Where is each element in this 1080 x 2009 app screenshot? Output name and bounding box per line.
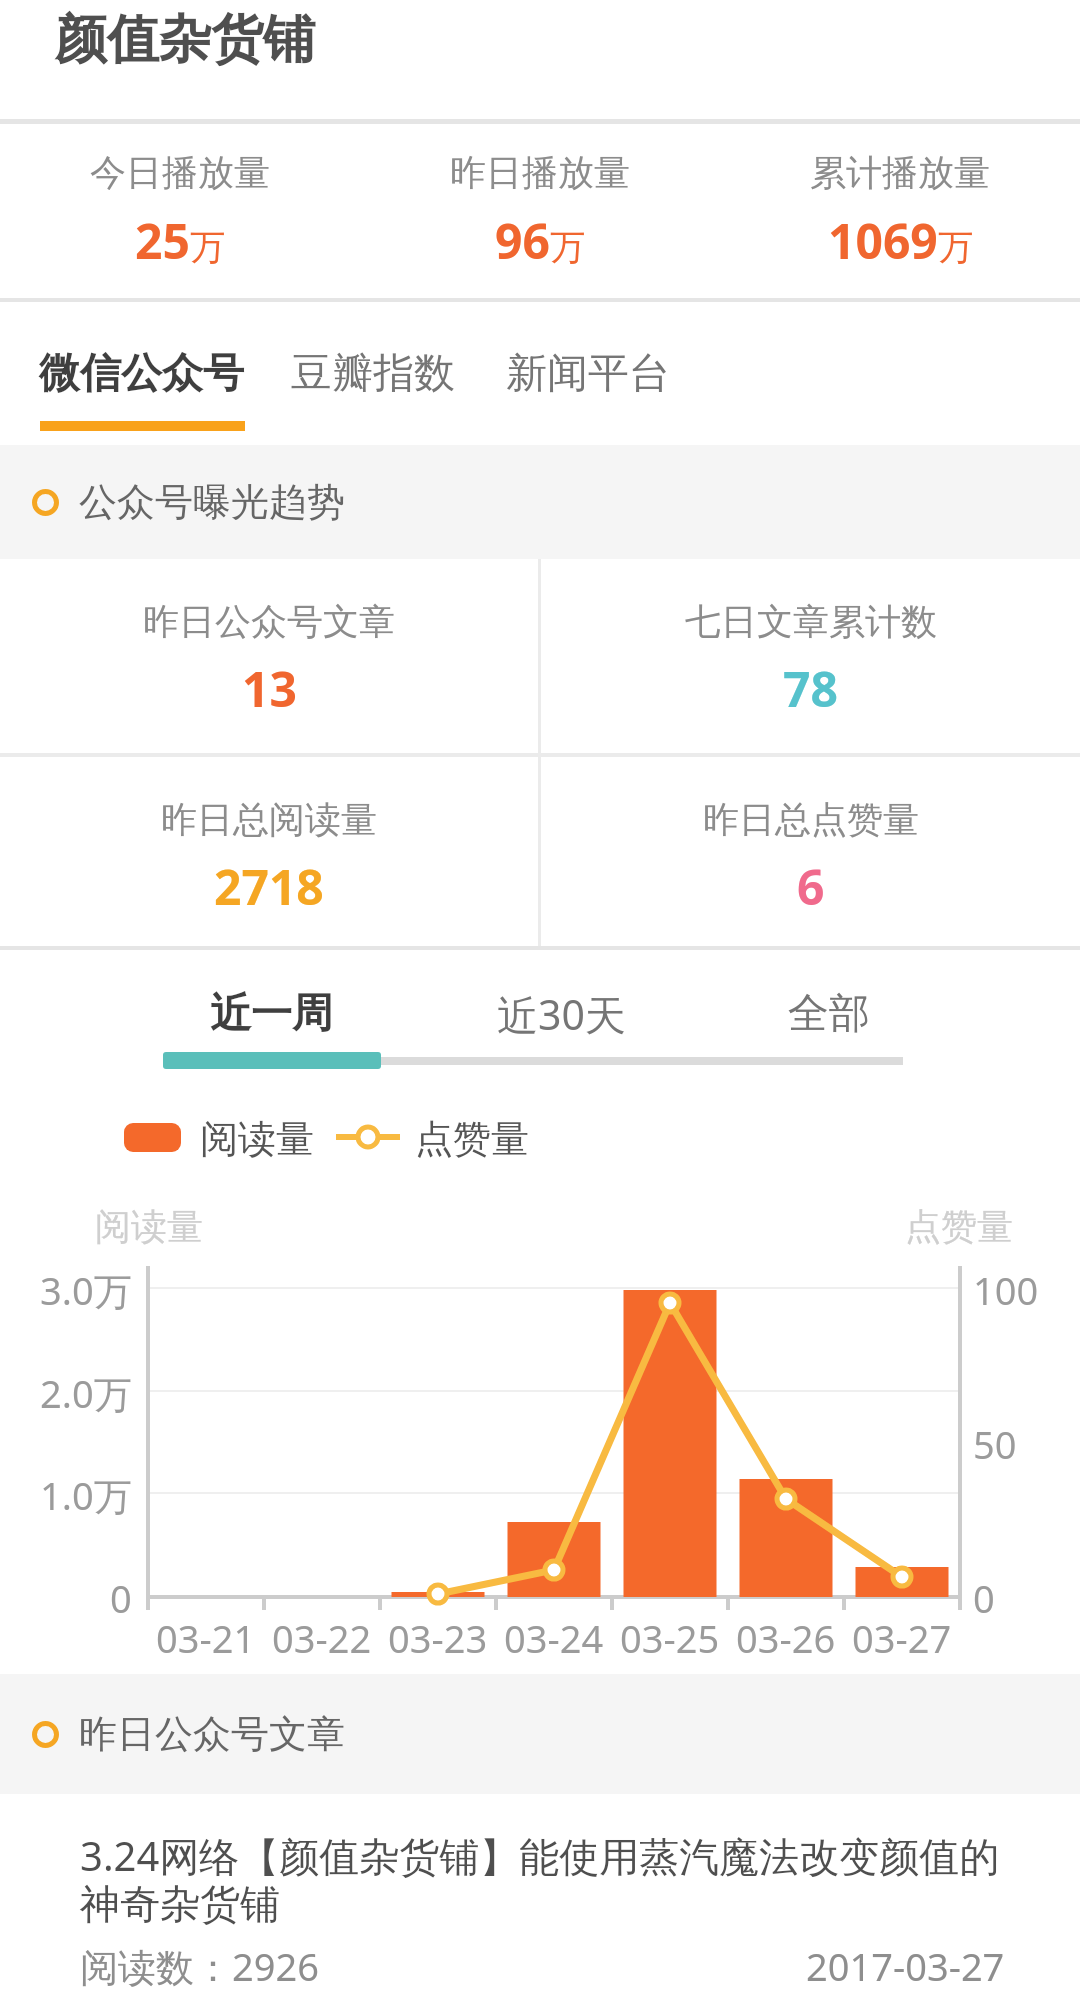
staticText: 2718 (214, 854, 324, 919)
staticText: 万 (938, 225, 973, 269)
staticText: 0 (110, 1572, 132, 1624)
staticText: 万 (190, 225, 225, 269)
staticText: 100 (973, 1264, 1039, 1316)
staticText: 阅读量 (200, 1115, 314, 1163)
staticText: 近30天 (497, 986, 626, 1042)
staticText: 万 (550, 225, 585, 269)
staticText: 累计播放量 (810, 150, 990, 195)
staticText: 2.0万 (40, 1367, 132, 1419)
button[interactable]: 豆瓣指数 (291, 348, 455, 400)
staticText: 昨日总阅读量 (161, 797, 377, 842)
staticText: 昨日公众号文章 (143, 599, 395, 644)
staticText: 点赞量 (905, 1204, 1013, 1249)
staticText: 全部 (788, 988, 870, 1040)
staticText: 颜值杂货铺 (55, 7, 315, 73)
staticText: 0 (973, 1572, 995, 1624)
button[interactable]: 3.24网络【颜值杂货铺】能使用蒸汽魔法改变颜值的神奇杂货铺 (0, 1794, 1080, 1992)
button[interactable]: 微信公众号 (39, 348, 244, 400)
staticText: 公众号曝光趋势 (79, 478, 345, 526)
staticText: 昨日公众号文章 (79, 1710, 345, 1758)
staticText: 03-26 (736, 1612, 836, 1664)
staticText: 新闻平台 (506, 348, 670, 400)
staticText: 2017-03-27 (806, 1940, 1005, 1992)
staticText: 03-22 (272, 1612, 372, 1664)
button[interactable]: 近30天 (461, 985, 661, 1043)
staticText: 3.24网络【颜值杂货铺】能使用蒸汽魔法改变颜值的神奇杂货铺 (80, 1828, 1008, 1930)
button[interactable]: 昨日总阅读量 (0, 757, 538, 946)
button[interactable]: 全部 (729, 985, 929, 1043)
staticText: 七日文章累计数 (685, 599, 937, 644)
button[interactable]: 近一周 (171, 985, 371, 1043)
staticText: 50 (973, 1418, 1017, 1470)
staticText: 3.0万 (40, 1264, 132, 1316)
button[interactable]: 新闻平台 (506, 348, 670, 400)
staticText: 点赞量 (415, 1115, 529, 1163)
button[interactable]: 昨日公众号文章 (0, 559, 538, 753)
staticText: 6 (797, 854, 825, 919)
staticText: 微信公众号 (39, 348, 244, 400)
staticText: 今日播放量 (90, 150, 270, 195)
staticText: 03-25 (620, 1612, 720, 1664)
staticText: 03-21 (156, 1612, 256, 1664)
staticText: 豆瓣指数 (291, 348, 455, 400)
staticText: 13 (242, 656, 297, 721)
staticText: 1.0万 (40, 1469, 132, 1521)
staticText: 昨日播放量 (450, 150, 630, 195)
staticText: 昨日总点赞量 (703, 797, 919, 842)
staticText: 阅读量 (95, 1204, 203, 1249)
staticText: 近一周 (210, 988, 333, 1040)
staticText: 03-27 (852, 1612, 952, 1664)
button[interactable]: 七日文章累计数 (541, 559, 1080, 753)
staticText: 96 (495, 208, 550, 273)
staticText: 03-24 (504, 1612, 604, 1664)
staticText: 1069 (828, 208, 938, 273)
button[interactable]: 昨日总点赞量 (541, 757, 1080, 946)
staticText: 03-23 (388, 1612, 488, 1664)
staticText: 25 (135, 208, 190, 273)
staticText: 78 (783, 656, 838, 721)
staticText: 阅读数：2926 (80, 1940, 319, 1992)
